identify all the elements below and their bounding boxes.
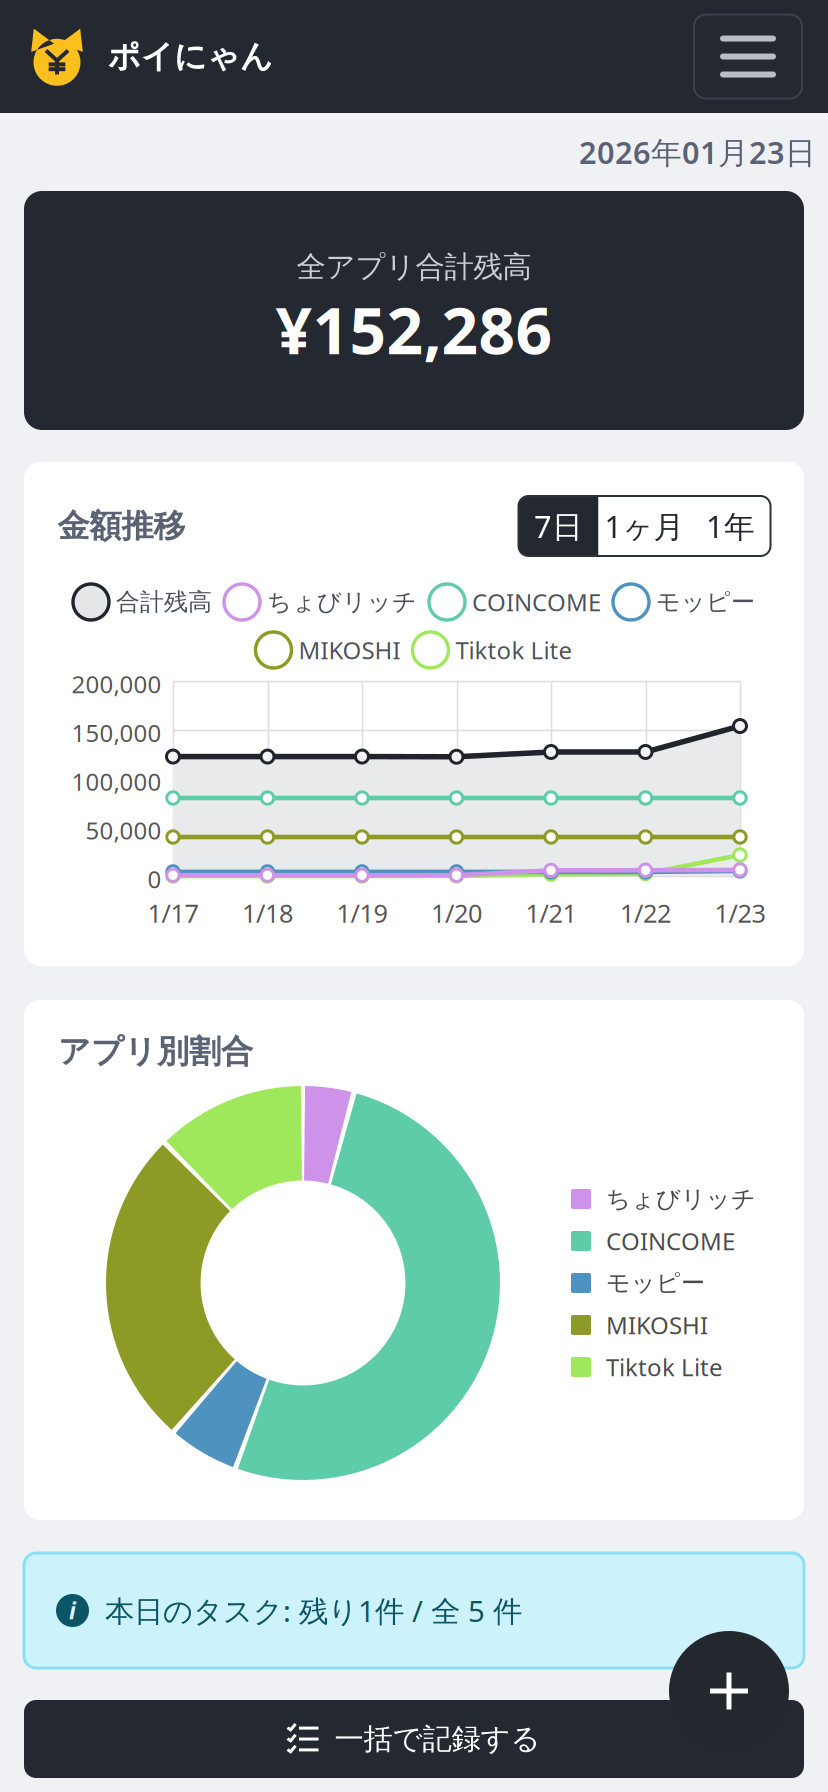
- staticText: 合計残高: [116, 587, 212, 617]
- staticText: 7日: [534, 506, 583, 546]
- staticText: 1年: [706, 506, 755, 546]
- staticText: 1/19: [336, 896, 387, 930]
- button[interactable]: 1年: [690, 496, 770, 556]
- staticText: MIKOSHI: [606, 1309, 708, 1341]
- staticText: 200,000: [71, 668, 161, 700]
- button[interactable]: Menu: [694, 14, 802, 98]
- staticText: 100,000: [71, 766, 161, 797]
- staticText: ポイにゃん: [108, 37, 273, 76]
- staticText: 1/17: [147, 896, 198, 930]
- staticText: 1/20: [431, 896, 482, 930]
- staticText: Tiktok Lite: [606, 1351, 723, 1383]
- button[interactable]: 7日: [518, 496, 598, 556]
- staticText: 一括で記録する: [334, 1721, 540, 1757]
- staticText: 1/22: [620, 896, 671, 930]
- button[interactable]: Add: [669, 1631, 789, 1751]
- staticText: モッピー: [656, 587, 755, 617]
- staticText: COINCOME: [472, 586, 601, 618]
- staticText: 150,000: [71, 717, 161, 749]
- staticText: ¥152,286: [275, 287, 552, 372]
- staticText: 本日のタスク: 残り1件 / 全 5 件: [105, 1591, 522, 1630]
- staticText: 金額推移: [57, 506, 185, 546]
- button[interactable]: 一括で記録する: [24, 1700, 804, 1778]
- staticText: ちょびリッチ: [606, 1184, 756, 1214]
- staticText: 50,000: [85, 814, 161, 846]
- staticText: 全アプリ合計残高: [296, 249, 531, 285]
- staticText: ちょびリッチ: [267, 587, 417, 617]
- staticText: i: [69, 1595, 76, 1625]
- staticText: 1/21: [525, 896, 576, 930]
- staticText: 1/23: [714, 896, 765, 930]
- staticText: 0: [147, 863, 161, 895]
- staticText: 1/18: [242, 896, 293, 930]
- staticText: Tiktok Lite: [455, 634, 572, 666]
- staticText: 1ヶ月: [604, 506, 684, 546]
- button[interactable]: 1ヶ月: [598, 496, 690, 556]
- staticText: 2026年01月23日: [579, 132, 816, 172]
- staticText: MIKOSHI: [298, 634, 400, 666]
- staticText: COINCOME: [606, 1225, 735, 1257]
- staticText: モッピー: [606, 1268, 705, 1298]
- staticText: アプリ別割合: [58, 1032, 253, 1071]
